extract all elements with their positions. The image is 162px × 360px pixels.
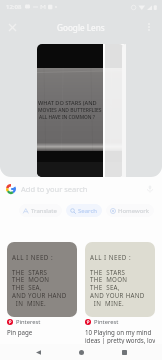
staticText: Pin page: [7, 328, 33, 336]
staticText: Pinterest: [16, 318, 41, 326]
button[interactable]: Homework: [106, 204, 154, 217]
staticText: Search: [78, 207, 97, 215]
button[interactable]: ALL I NEED :: [85, 242, 155, 344]
staticText: MOVIES AND BUTTERFLIES: [38, 107, 102, 114]
staticText: 10 Playing on my mind: [85, 328, 152, 336]
button[interactable]: Home: [73, 344, 89, 360]
button[interactable]: Add to your search: [6, 177, 154, 201]
staticText: ideas | pretty words, love...: [85, 336, 155, 344]
staticText: THE STARS THE MOON THE SEA, AND YOUR HAN…: [90, 268, 145, 308]
staticText: Homework: [118, 207, 149, 215]
button[interactable]: Search: [66, 204, 102, 217]
staticText: ALL I NEED :: [90, 253, 132, 261]
button[interactable]: Recents: [116, 344, 132, 360]
staticText: Add to your search: [21, 184, 88, 194]
staticText: 12:08: [6, 3, 22, 11]
button[interactable]: Close: [3, 18, 21, 36]
staticText: ALL I NEED :: [12, 253, 54, 261]
staticText: WHAT DO STARS (AND: [38, 99, 97, 107]
staticText: Pinterest: [94, 318, 119, 326]
staticText: ALL HAVE IN COMMON ?: [39, 114, 95, 121]
staticText: Translate: [31, 207, 57, 215]
staticText: Google Lens: [57, 22, 105, 33]
button[interactable]: ALL I NEED :: [7, 242, 77, 336]
button[interactable]: Back: [30, 344, 46, 360]
staticText: THE STARS THE MOON THE SEA, AND YOUR HAN…: [12, 268, 67, 308]
button[interactable]: Translate: [19, 204, 62, 217]
